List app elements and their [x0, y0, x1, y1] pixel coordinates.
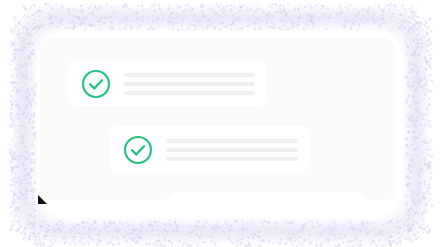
button[interactable]: Completed: [68, 61, 266, 106]
other: Completed: [82, 70, 110, 98]
button[interactable]: Completed: [110, 126, 309, 173]
other: Completed: [124, 136, 152, 164]
